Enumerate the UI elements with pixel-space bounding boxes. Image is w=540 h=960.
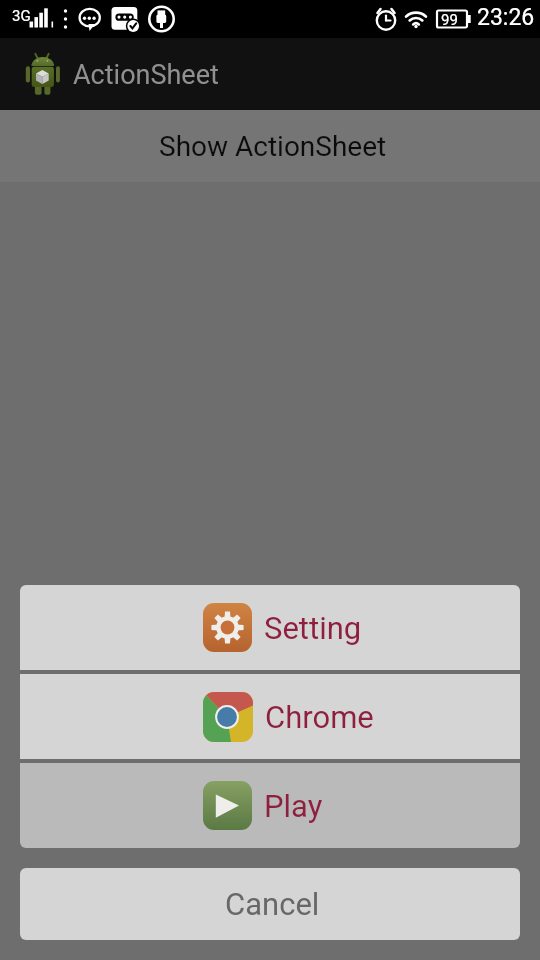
button[interactable]: Play [20, 763, 520, 848]
staticText: Show ActionSheet [159, 130, 387, 163]
staticText: Chrome [265, 699, 374, 735]
button[interactable]: Chrome [20, 674, 520, 759]
button[interactable]: Show ActionSheet [0, 110, 540, 182]
staticText: 23:26 [477, 4, 535, 31]
staticText: Setting [264, 610, 362, 646]
button[interactable]: Cancel [20, 868, 520, 940]
staticText: Cancel [225, 886, 320, 922]
staticText: Play [264, 788, 323, 824]
button[interactable]: Setting [20, 585, 520, 670]
staticText: ActionSheet [73, 59, 219, 91]
staticText: 3G [12, 7, 31, 25]
staticText: 99 [441, 11, 458, 29]
